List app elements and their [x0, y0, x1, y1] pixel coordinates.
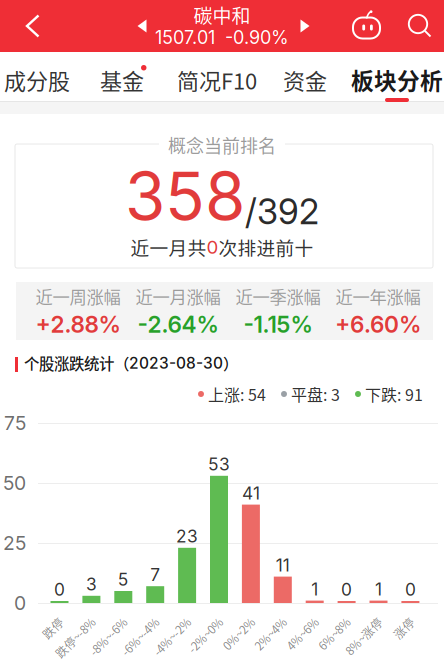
staticText: -2%~0% — [177, 611, 221, 628]
button[interactable]: Back — [24, 13, 42, 39]
button[interactable]: Search — [406, 13, 434, 39]
staticText: 涨停 — [388, 611, 412, 628]
staticText: -6%~-4% — [109, 611, 157, 628]
staticText: 6%~8% — [309, 611, 349, 628]
staticText: 个股涨跌统计（ — [24, 352, 129, 374]
staticText: 75 — [4, 411, 26, 435]
staticText: 次排进前十 — [218, 233, 313, 261]
staticText: 50 — [3, 471, 26, 495]
staticText: /392 — [245, 190, 319, 232]
staticText: 41 — [242, 483, 260, 503]
staticText: ） — [223, 352, 238, 374]
button[interactable]: 板块分析 — [349, 62, 444, 103]
staticText: 跌停~-8% — [42, 611, 93, 628]
staticText: 8%~涨停 — [333, 611, 380, 628]
staticText: 下跌: 91 — [365, 382, 423, 406]
staticText: 5 — [118, 569, 129, 590]
staticText: 4%~6% — [277, 611, 317, 628]
staticText: 近一月共 — [130, 233, 206, 261]
staticText: 1 — [311, 579, 318, 599]
button[interactable]: Previous — [131, 17, 153, 35]
staticText: 资金 — [283, 64, 327, 96]
staticText: 0 — [14, 591, 26, 615]
staticText: 7 — [150, 564, 160, 585]
staticText: 53 — [208, 454, 230, 475]
staticText: 概念当前排名 — [168, 132, 276, 158]
staticText: 2023-08-30 — [129, 354, 223, 372]
staticText: -4%~-2% — [141, 611, 189, 628]
staticText: 0 — [54, 579, 65, 600]
staticText: 碳中和 — [193, 1, 250, 29]
staticText: 近一年涨幅 — [335, 284, 420, 309]
staticText: 近一月涨幅 — [135, 284, 220, 309]
button[interactable]: 成分股 — [0, 62, 79, 98]
button[interactable]: 资金 — [263, 62, 347, 98]
staticText: 358 — [125, 156, 245, 235]
staticText: 简况F10 — [177, 64, 257, 96]
button[interactable]: Assistant — [352, 9, 382, 41]
button[interactable]: Next — [294, 17, 316, 35]
staticText: +2.88% — [35, 311, 120, 338]
staticText: 近一季涨幅 — [235, 284, 320, 309]
staticText: 11 — [276, 555, 290, 575]
staticText: 1507.01 -0.90% — [155, 27, 289, 48]
button[interactable]: 基金 — [80, 62, 164, 98]
staticText: 25 — [3, 531, 26, 555]
staticText: 上涨: 54 — [208, 382, 266, 406]
staticText: -8%~-6% — [77, 611, 125, 628]
staticText: 近一周涨幅 — [35, 284, 120, 309]
staticText: 23 — [176, 526, 198, 547]
button[interactable]: 简况F10 — [169, 62, 265, 98]
staticText: +6.60% — [335, 311, 421, 338]
staticText: 板块分析 — [351, 63, 443, 96]
staticText: 2%~4% — [245, 611, 285, 628]
staticText: 基金 — [100, 64, 144, 96]
staticText: 0 — [206, 236, 218, 258]
staticText: 1 — [375, 579, 382, 599]
staticText: 0 — [405, 579, 416, 600]
staticText: -2.64% — [137, 311, 218, 338]
staticText: 0 — [341, 579, 352, 600]
staticText: -1.15% — [243, 311, 312, 338]
staticText: 平盘: 3 — [291, 382, 340, 406]
staticText: 0%~2% — [213, 611, 253, 628]
staticText: 3 — [86, 574, 97, 595]
staticText: 跌停 — [37, 611, 61, 628]
staticText: 成分股 — [4, 64, 70, 96]
